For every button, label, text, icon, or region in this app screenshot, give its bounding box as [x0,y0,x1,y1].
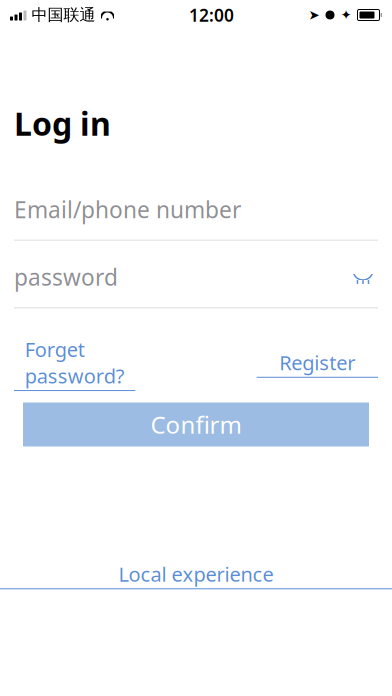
button[interactable]: Forget password? [14,352,135,374]
staticText: ✦ [340,7,351,22]
staticText: ➤ [308,7,319,22]
staticText: password [14,262,118,292]
staticText: Register [279,349,355,376]
staticText: Email/phone number [14,194,241,224]
button[interactable]: Register [257,352,378,374]
staticText: Forget password? [25,336,125,389]
staticText: Confirm [150,409,241,440]
button[interactable]: Local experience [0,564,392,586]
button[interactable]: Confirm [23,402,369,446]
button[interactable]: Show password [348,266,378,288]
staticText: Local experience [118,561,273,587]
staticText: 12:00 [189,3,234,26]
staticText: 中国联通 [31,5,95,25]
staticText: Log in [14,102,111,144]
